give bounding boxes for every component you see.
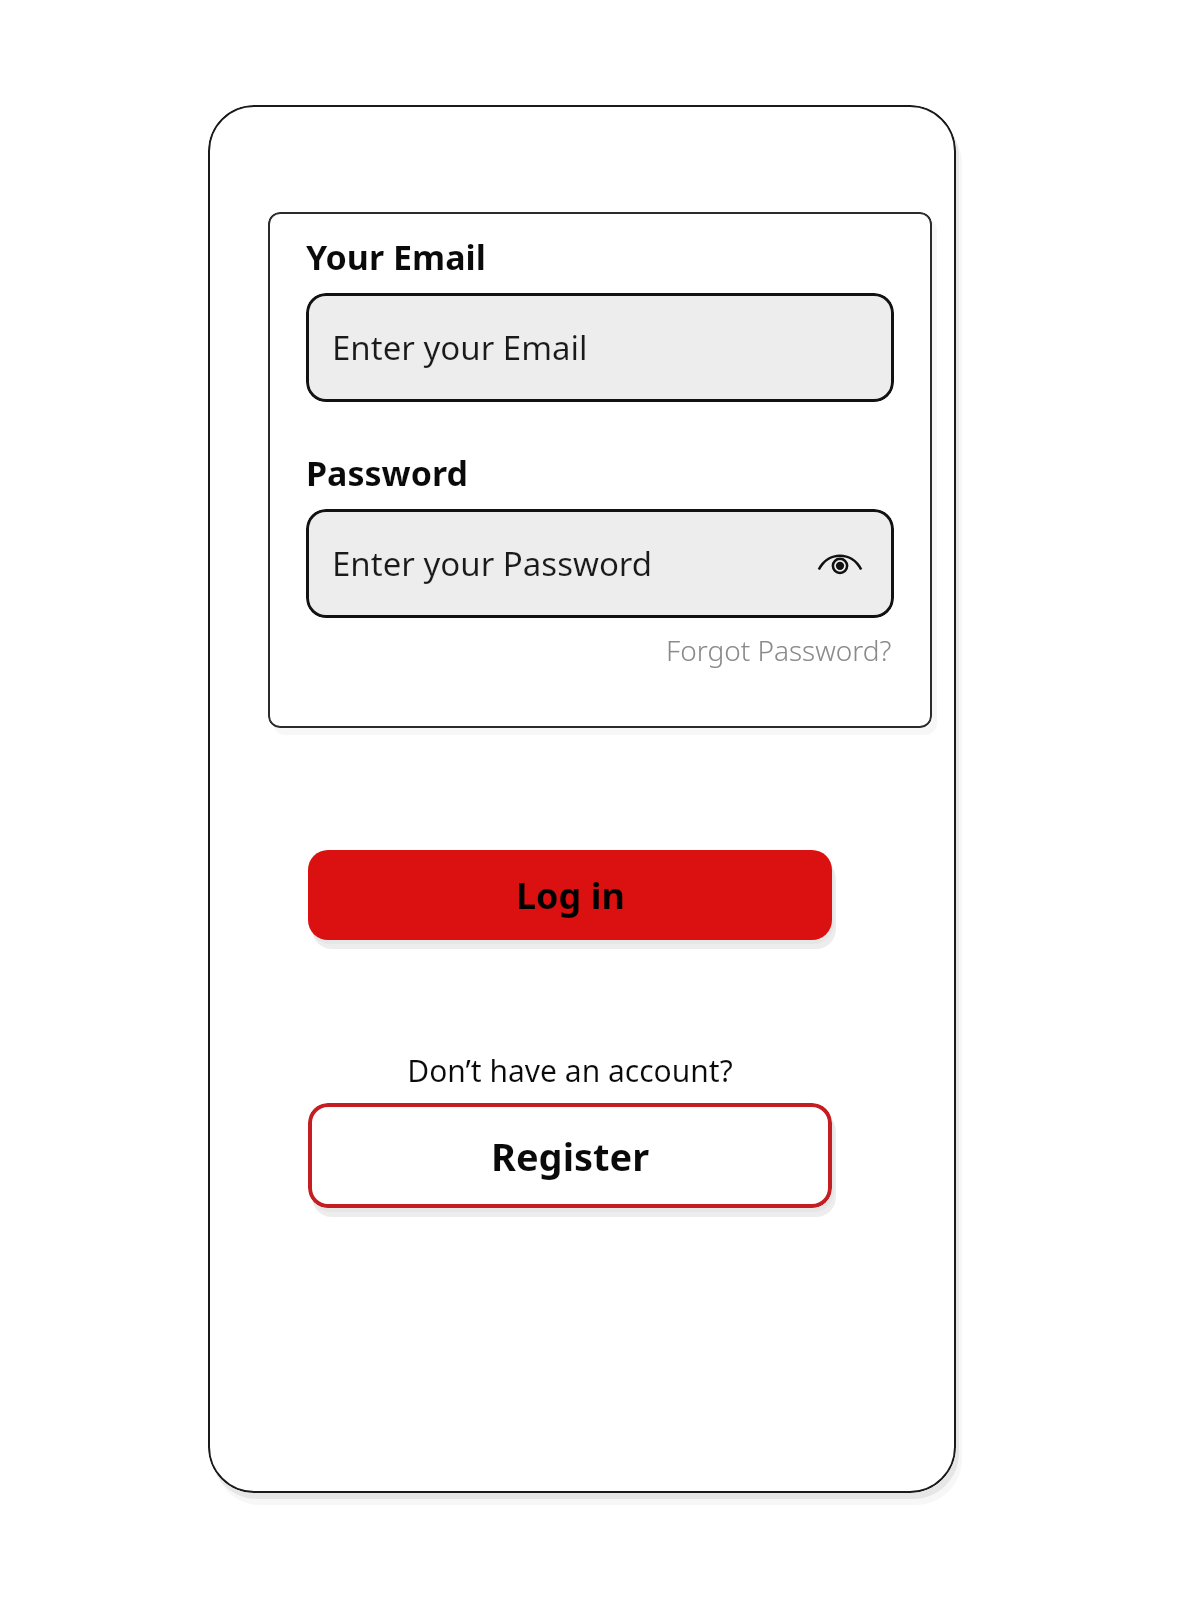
button[interactable]: Show password [812,536,868,592]
staticText: Don’t have an account? [407,1050,733,1091]
staticText: Password [306,450,468,496]
button[interactable]: Forgot Password? [664,629,894,671]
button[interactable]: Enter your Email [306,293,894,402]
staticText: Enter your Email [332,325,868,370]
button[interactable]: Log in [308,850,832,940]
staticText: Your Email [306,234,486,280]
button[interactable]: Enter your Password [306,509,894,618]
staticText: Log in [516,871,625,920]
staticText: Enter your Password [332,541,812,586]
staticText: Forgot Password? [666,631,892,669]
button[interactable]: Register [308,1103,832,1208]
staticText: Register [491,1130,650,1182]
